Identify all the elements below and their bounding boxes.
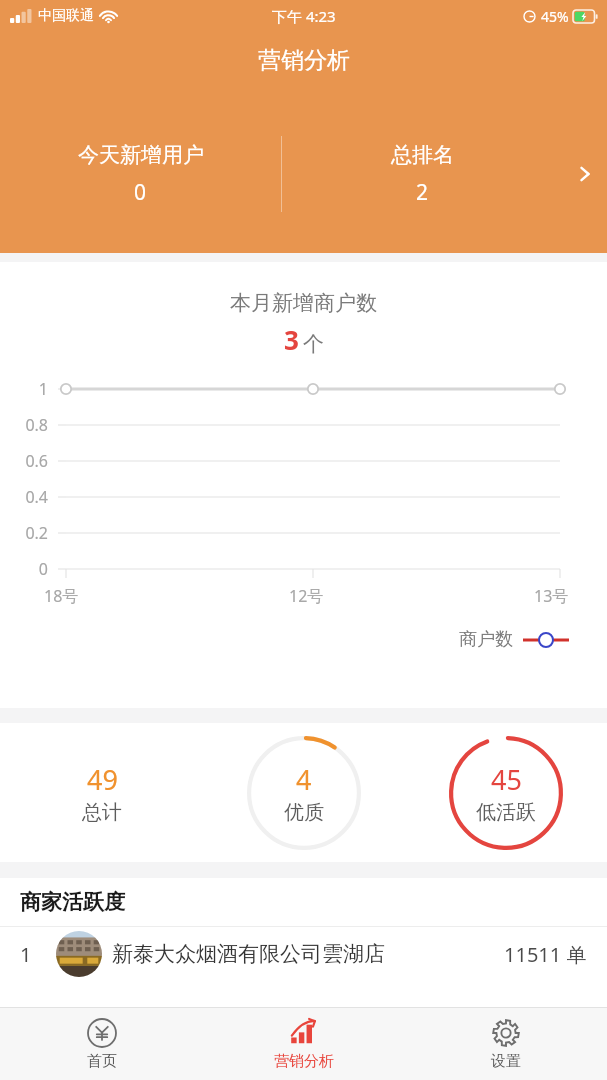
- button[interactable]: 49: [0, 723, 203, 862]
- staticText: 45: [491, 761, 522, 798]
- button[interactable]: 1: [0, 927, 607, 981]
- staticText: 首页: [87, 1052, 117, 1071]
- staticText: 1: [20, 941, 56, 968]
- staticText: 个: [303, 331, 324, 357]
- staticText: 今天新增用户: [78, 142, 204, 168]
- button[interactable]: More details: [563, 144, 607, 204]
- button[interactable]: 营销分析: [203, 1008, 405, 1080]
- staticText: 0.6: [0, 450, 48, 472]
- staticText: 商户数: [459, 628, 513, 651]
- staticText: 低活跃: [476, 800, 536, 825]
- staticText: 总计: [82, 800, 122, 825]
- staticText: 0.4: [0, 486, 48, 508]
- button[interactable]: 总排名: [282, 138, 563, 211]
- staticText: 优质: [284, 800, 324, 825]
- staticText: 3: [284, 322, 299, 357]
- staticText: 营销分析: [258, 46, 350, 75]
- staticText: 1: [0, 378, 48, 400]
- staticText: 总排名: [391, 142, 454, 168]
- staticText: 2: [416, 178, 429, 207]
- staticText: 13号: [534, 585, 569, 607]
- staticText: 12号: [289, 585, 324, 607]
- staticText: 18号: [44, 585, 79, 607]
- staticText: 4: [296, 761, 312, 798]
- staticText: 11511 单: [504, 941, 587, 968]
- staticText: 45%: [541, 7, 569, 26]
- button[interactable]: 首页: [0, 1008, 203, 1080]
- staticText: 0: [0, 558, 48, 580]
- button[interactable]: 设置: [405, 1008, 607, 1080]
- staticText: 0.2: [0, 522, 48, 544]
- staticText: 下午 4:23: [272, 6, 336, 26]
- staticText: 新泰大众烟酒有限公司雲湖店: [112, 941, 504, 967]
- staticText: 0.8: [0, 414, 48, 436]
- staticText: 中国联通: [38, 7, 94, 25]
- staticText: 0: [134, 178, 147, 207]
- staticText: 营销分析: [274, 1052, 334, 1071]
- staticText: 49: [87, 761, 118, 798]
- button[interactable]: 4: [203, 723, 405, 862]
- button[interactable]: 45: [405, 723, 607, 862]
- staticText: 本月新增商户数: [0, 290, 607, 316]
- button[interactable]: 今天新增用户: [0, 138, 281, 211]
- staticText: 设置: [491, 1052, 521, 1071]
- staticText: 商家活跃度: [20, 889, 125, 915]
